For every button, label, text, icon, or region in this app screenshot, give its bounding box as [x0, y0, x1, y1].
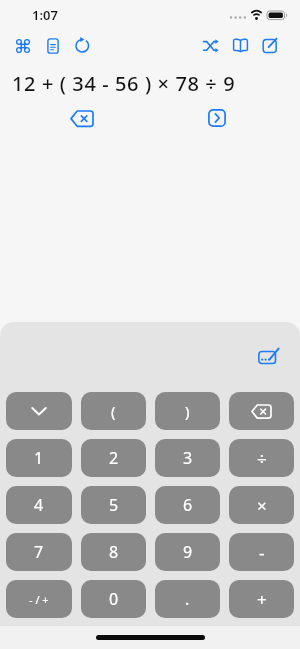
button[interactable]: 3 — [155, 439, 220, 477]
button[interactable] — [70, 110, 94, 127]
button[interactable] — [6, 392, 72, 430]
button[interactable] — [14, 37, 31, 54]
button[interactable] — [232, 37, 249, 54]
staticText: 4 — [34, 494, 44, 516]
button[interactable]: ) — [155, 392, 220, 430]
button[interactable] — [208, 109, 226, 127]
button[interactable] — [258, 346, 280, 365]
button[interactable]: 6 — [155, 486, 220, 524]
staticText: 8 — [109, 541, 119, 563]
button[interactable]: + — [229, 580, 294, 618]
staticText: ) — [185, 401, 190, 421]
staticText: 1:07 — [32, 6, 58, 24]
staticText: 5 — [109, 494, 119, 516]
button[interactable]: ( — [81, 392, 146, 430]
staticText: + — [257, 588, 267, 611]
button[interactable]: 7 — [6, 533, 72, 571]
button[interactable]: - / + — [6, 580, 72, 618]
button[interactable] — [74, 37, 91, 54]
staticText: 6 — [183, 494, 193, 516]
button[interactable]: 0 — [81, 580, 146, 618]
button[interactable]: 9 — [155, 533, 220, 571]
button[interactable]: 4 — [6, 486, 72, 524]
staticText: 7 — [34, 541, 44, 563]
staticText: - — [259, 541, 265, 564]
staticText: 9 — [183, 541, 193, 563]
button[interactable] — [202, 37, 219, 54]
button[interactable] — [44, 37, 61, 54]
button[interactable]: × — [229, 486, 294, 524]
staticText: 3 — [183, 447, 193, 469]
button[interactable]: 5 — [81, 486, 146, 524]
button[interactable]: - — [229, 533, 294, 571]
staticText: ÷ — [257, 447, 267, 470]
button[interactable]: 2 — [81, 439, 146, 477]
staticText: . — [185, 588, 190, 610]
button[interactable]: 8 — [81, 533, 146, 571]
staticText: 12 + ( 34 - 56 ) × 78 ÷ 9 — [12, 70, 236, 97]
staticText: 0 — [109, 588, 119, 610]
button[interactable] — [229, 392, 294, 430]
staticText: 1 — [34, 447, 44, 469]
button[interactable] — [262, 37, 279, 54]
staticText: ( — [111, 401, 116, 421]
staticText: - / + — [29, 592, 49, 607]
button[interactable]: ÷ — [229, 439, 294, 477]
button[interactable]: . — [155, 580, 220, 618]
staticText: × — [257, 494, 267, 517]
button[interactable]: 1 — [6, 439, 72, 477]
staticText: 2 — [109, 447, 119, 469]
